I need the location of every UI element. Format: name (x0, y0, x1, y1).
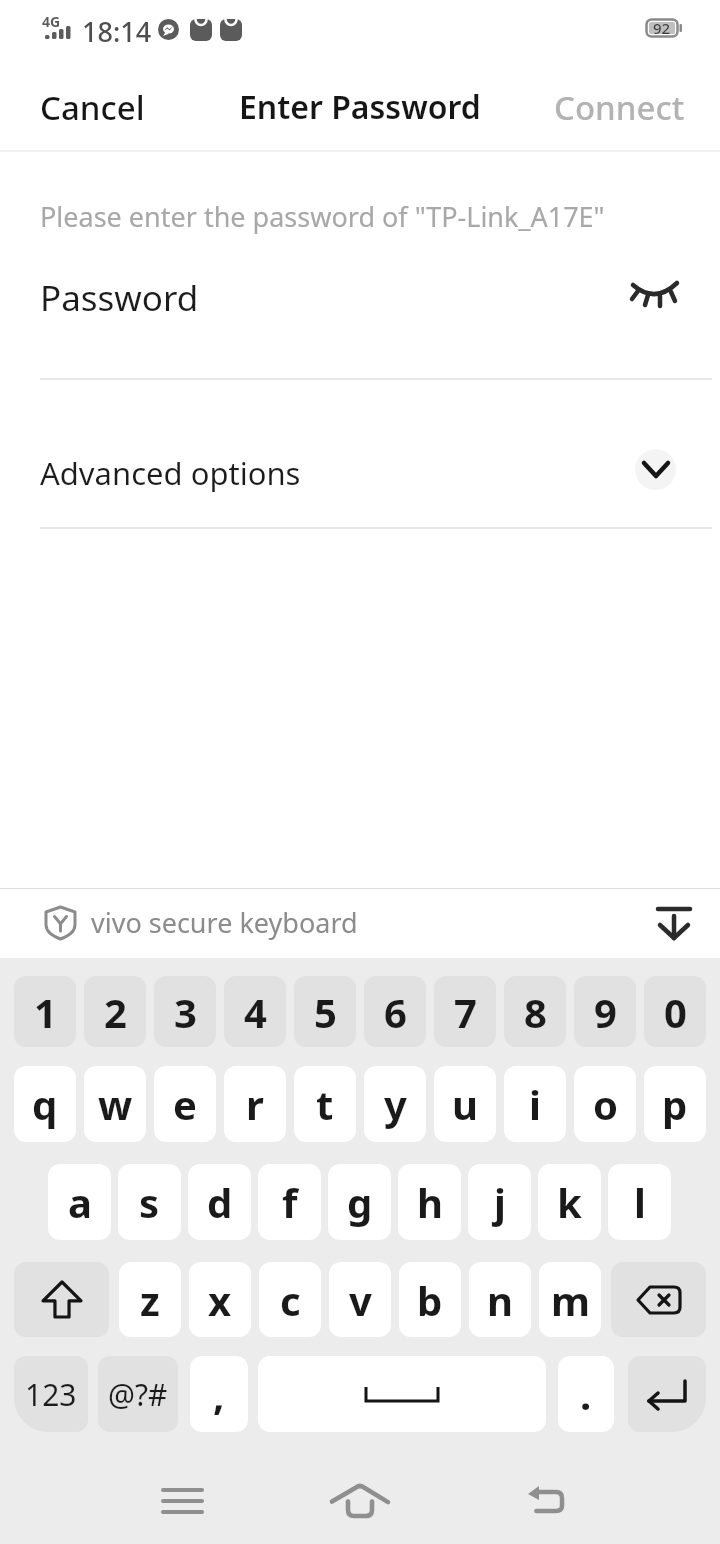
button[interactable] (258, 1356, 546, 1432)
button[interactable] (628, 1356, 706, 1432)
staticText: 0 (664, 985, 687, 1039)
staticText: a (68, 1175, 92, 1229)
staticText: 4 (244, 985, 267, 1039)
button[interactable]: p (644, 1066, 706, 1142)
button[interactable]: v (329, 1262, 391, 1337)
staticText: x (208, 1273, 232, 1327)
staticText: @?# (108, 1374, 168, 1415)
staticText: . (580, 1367, 592, 1421)
staticText: 6 (384, 985, 407, 1039)
button[interactable]: Cancel (40, 85, 145, 130)
staticText: j (494, 1175, 506, 1229)
button[interactable]: 7 (434, 976, 496, 1047)
button[interactable] (14, 1262, 109, 1337)
staticText: vivo secure keyboard (91, 904, 358, 941)
button[interactable]: e (154, 1066, 216, 1142)
staticText: k (557, 1175, 582, 1229)
button[interactable]: 5 (294, 976, 356, 1047)
staticText: g (347, 1175, 373, 1229)
button[interactable]: 123 (14, 1356, 88, 1432)
button[interactable]: 0 (644, 976, 706, 1047)
staticText: s (139, 1175, 160, 1229)
button[interactable]: 9 (574, 976, 636, 1047)
button[interactable] (635, 449, 676, 490)
button[interactable] (656, 905, 692, 941)
button[interactable]: 1 (14, 976, 76, 1047)
staticText: 9 (594, 985, 617, 1039)
button[interactable]: z (119, 1262, 181, 1337)
staticText: q (32, 1077, 58, 1131)
button[interactable]: l (608, 1164, 671, 1240)
staticText: i (529, 1077, 541, 1131)
staticText: 2 (104, 985, 127, 1039)
staticText: 3 (174, 985, 197, 1039)
staticText: 123 (25, 1374, 77, 1415)
button[interactable]: n (469, 1262, 531, 1337)
button[interactable]: g (328, 1164, 391, 1240)
staticText: 18:14 (82, 13, 152, 50)
button[interactable]: y (364, 1066, 426, 1142)
staticText: v (349, 1273, 372, 1327)
button[interactable]: . (558, 1356, 614, 1432)
button[interactable]: , (190, 1356, 248, 1432)
staticText: w (98, 1077, 133, 1131)
staticText: Enter Password (239, 85, 481, 129)
button[interactable] (528, 1486, 566, 1514)
button[interactable]: t (294, 1066, 356, 1142)
button[interactable] (163, 1488, 202, 1514)
staticText: 4G (42, 12, 61, 31)
button[interactable]: @?# (98, 1356, 178, 1432)
button[interactable]: w (84, 1066, 146, 1142)
staticText: 1 (34, 985, 57, 1039)
button[interactable]: a (48, 1164, 111, 1240)
button[interactable]: u (434, 1066, 496, 1142)
staticText: e (173, 1077, 197, 1131)
button[interactable]: j (468, 1164, 531, 1240)
staticText: d (207, 1175, 233, 1229)
button[interactable] (611, 1262, 706, 1337)
button[interactable]: q (14, 1066, 76, 1142)
button[interactable]: 6 (364, 976, 426, 1047)
button[interactable]: k (538, 1164, 601, 1240)
staticText: c (280, 1273, 301, 1327)
staticText: 7 (454, 985, 477, 1039)
staticText: p (662, 1077, 688, 1131)
button[interactable]: c (259, 1262, 321, 1337)
staticText: y (384, 1077, 407, 1131)
staticText: m (551, 1273, 590, 1327)
button[interactable]: b (399, 1262, 461, 1337)
button[interactable]: 4 (224, 976, 286, 1047)
staticText: t (316, 1077, 334, 1131)
staticText: 5 (314, 985, 337, 1039)
button[interactable]: 3 (154, 976, 216, 1047)
staticText: o (593, 1077, 618, 1131)
button[interactable]: r (224, 1066, 286, 1142)
staticText: , (213, 1367, 225, 1421)
staticText: n (487, 1273, 513, 1327)
staticText: Advanced options (40, 452, 301, 494)
button[interactable]: m (539, 1262, 601, 1337)
button[interactable]: Connect (554, 85, 685, 130)
button[interactable]: s (118, 1164, 181, 1240)
staticText: Please enter the password of "TP-Link_A1… (40, 198, 605, 235)
button[interactable]: x (189, 1262, 251, 1337)
button[interactable]: i (504, 1066, 566, 1142)
staticText: l (634, 1175, 646, 1229)
staticText: f (282, 1175, 298, 1229)
button[interactable]: f (258, 1164, 321, 1240)
button[interactable]: o (574, 1066, 636, 1142)
button[interactable]: h (398, 1164, 461, 1240)
staticText: 92 (653, 18, 671, 38)
button[interactable]: 8 (504, 976, 566, 1047)
button[interactable]: 2 (84, 976, 146, 1047)
staticText: z (140, 1273, 160, 1327)
staticText: r (246, 1077, 264, 1131)
button[interactable]: d (188, 1164, 251, 1240)
staticText: Cancel (40, 85, 145, 130)
button[interactable] (330, 1485, 390, 1518)
staticText: Connect (554, 85, 685, 130)
button[interactable] (630, 278, 680, 310)
staticText: Password (40, 274, 199, 322)
staticText: b (417, 1273, 443, 1327)
staticText: h (417, 1175, 443, 1229)
